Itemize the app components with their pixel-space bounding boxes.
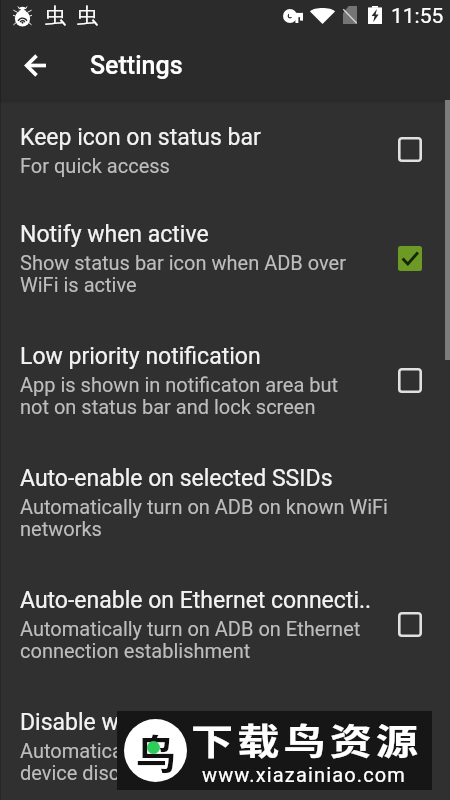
staticText: Notify when active: [20, 221, 209, 248]
button[interactable]: Low priority notification: [0, 319, 450, 441]
staticText: Auto-enable on selected SSIDs: [20, 465, 333, 492]
button[interactable]: Notify when active: [0, 197, 450, 319]
staticText: 虫: [77, 3, 98, 29]
button[interactable]: Disable when screen off: [0, 685, 450, 800]
staticText: For quick access: [20, 154, 170, 177]
staticText: 下载鸟资源: [191, 713, 423, 765]
staticText: Automatically turn on ADB on Ethernet co…: [20, 617, 361, 663]
button[interactable]: Auto-enable on Ethernet connecti..: [0, 563, 450, 685]
button[interactable]: Back: [11, 41, 59, 89]
button[interactable]: Enabled: [386, 234, 434, 282]
staticText: Automatically turn on ADB on known WiFi …: [20, 495, 388, 541]
staticText: Low priority notification: [20, 343, 261, 370]
button[interactable]: Disabled: [386, 356, 434, 404]
staticText: Keep icon on status bar: [20, 124, 261, 151]
button[interactable]: Keep icon on status bar: [0, 100, 450, 197]
staticText: Disable when screen off: [20, 709, 266, 736]
staticText: 虫: [45, 3, 66, 29]
staticText: Auto-enable on Ethernet connecti..: [20, 587, 372, 614]
button[interactable]: Disabled: [386, 600, 434, 648]
button[interactable]: Auto-enable on selected SSIDs: [0, 441, 450, 563]
staticText: Show status bar icon when ADB over WiFi …: [20, 251, 346, 297]
staticText: www.xiazainiao.com: [202, 763, 407, 786]
staticText: App is shown in notificaton area but not…: [20, 373, 339, 419]
staticText: 11:55: [391, 4, 444, 29]
button[interactable]: Disabled: [386, 125, 434, 173]
staticText: 鸟: [136, 723, 176, 781]
staticText: Settings: [90, 51, 183, 80]
staticText: Automatically turn off ADB when device d…: [20, 739, 309, 785]
